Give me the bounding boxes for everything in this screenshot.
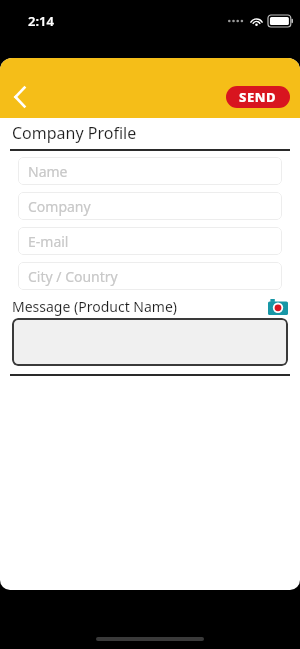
button[interactable]: Add photo (268, 299, 288, 315)
staticText: SEND (239, 88, 277, 106)
button[interactable]: Company (18, 192, 282, 220)
staticText: 2:14 (28, 12, 54, 30)
button[interactable]: Back (4, 81, 36, 113)
staticText: City / Country (28, 267, 118, 286)
button[interactable]: City / Country (18, 262, 282, 290)
button[interactable]: Name (18, 157, 282, 185)
staticText: Company (28, 197, 91, 216)
button[interactable]: SEND (226, 86, 290, 108)
staticText: Company Profile (12, 122, 137, 144)
button[interactable] (12, 318, 288, 366)
button[interactable]: E-mail (18, 227, 282, 255)
staticText: Name (28, 162, 68, 181)
staticText: Message (Product Name) (12, 297, 178, 316)
staticText: E-mail (28, 232, 69, 251)
